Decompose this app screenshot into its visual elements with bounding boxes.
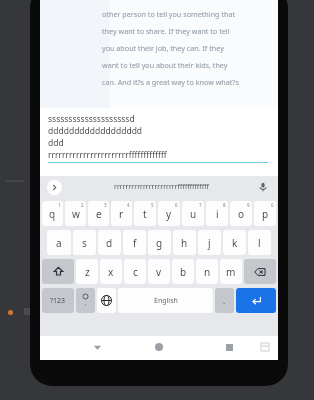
button[interactable]: Switch keyboard xyxy=(258,340,272,354)
staticText: ssssssssssssssssssssd xyxy=(48,113,135,125)
button[interactable]: ?123 xyxy=(42,288,74,313)
button[interactable]: o xyxy=(230,201,252,226)
staticText: you about their job, they can. If they xyxy=(102,43,224,53)
staticText: e xyxy=(96,207,102,221)
staticText: can. And it?s a great way to know what?s xyxy=(102,77,239,87)
button[interactable]: s xyxy=(73,230,96,255)
staticText: p xyxy=(262,207,269,221)
button[interactable]: v xyxy=(148,259,170,284)
staticText: English xyxy=(154,296,178,306)
staticText: k xyxy=(232,236,238,250)
button[interactable]: Emoji xyxy=(76,288,95,313)
staticText: m xyxy=(226,265,236,279)
staticText: . xyxy=(223,295,226,306)
button[interactable]: z xyxy=(76,259,98,284)
staticText: 7 xyxy=(199,202,202,208)
button[interactable]: q xyxy=(42,201,63,226)
staticText: o xyxy=(238,207,245,221)
button[interactable]: Enter xyxy=(236,288,276,313)
button[interactable]: Shift xyxy=(42,259,74,284)
staticText: 5 xyxy=(151,202,154,208)
staticText: r xyxy=(119,207,124,221)
button[interactable]: Home xyxy=(150,338,168,356)
staticText: 8 xyxy=(223,202,226,208)
button[interactable]: x xyxy=(100,259,122,284)
staticText: l xyxy=(258,236,261,250)
staticText: v xyxy=(156,265,162,279)
button[interactable]: l xyxy=(248,230,271,255)
button[interactable]: t xyxy=(134,201,156,226)
staticText: other person to tell you something that xyxy=(102,9,236,19)
button[interactable]: p xyxy=(254,201,276,226)
button[interactable]: e xyxy=(88,201,109,226)
button[interactable]: h xyxy=(173,230,196,255)
button[interactable]: u xyxy=(182,201,204,226)
button[interactable]: k xyxy=(223,230,246,255)
button[interactable]: m xyxy=(220,259,242,284)
button[interactable]: c xyxy=(124,259,146,284)
staticText: j xyxy=(208,236,211,250)
staticText: y xyxy=(166,207,172,221)
staticText: 9 xyxy=(247,202,250,208)
button[interactable]: n xyxy=(196,259,218,284)
button[interactable]: g xyxy=(148,230,171,255)
button[interactable]: . xyxy=(215,288,234,313)
staticText: u xyxy=(190,207,197,221)
button[interactable]: Hide keyboard xyxy=(88,338,106,356)
staticText: dddddddddddddddddd xyxy=(48,125,143,137)
staticText: 3 xyxy=(104,202,107,208)
button[interactable]: d xyxy=(98,230,121,255)
staticText: ?123 xyxy=(50,296,66,306)
staticText: t xyxy=(143,207,147,221)
button[interactable]: a xyxy=(47,230,71,255)
button[interactable]: f xyxy=(123,230,146,255)
button[interactable]: j xyxy=(198,230,221,255)
staticText: g xyxy=(156,236,163,250)
staticText: 1 xyxy=(58,202,61,208)
staticText: w xyxy=(72,207,80,221)
button[interactable]: r xyxy=(111,201,132,226)
staticText: 6 xyxy=(175,202,178,208)
staticText: h xyxy=(181,236,188,250)
button[interactable]: i xyxy=(206,201,228,226)
button[interactable]: b xyxy=(172,259,194,284)
staticText: d xyxy=(106,236,113,250)
staticText: s xyxy=(82,236,87,250)
button[interactable]: ssssssssssssssssssssd xyxy=(48,113,268,163)
staticText: n xyxy=(204,265,211,279)
staticText: , xyxy=(85,299,87,307)
staticText: x xyxy=(108,265,114,279)
staticText: rrrrrrrrrrrrrrrrrrrrrrrfffffffffffff xyxy=(48,149,167,161)
staticText: 4 xyxy=(127,202,130,208)
staticText: f xyxy=(133,236,137,250)
button[interactable]: y xyxy=(158,201,180,226)
staticText: c xyxy=(133,265,138,279)
staticText: i xyxy=(216,207,219,221)
staticText: q xyxy=(49,207,56,221)
button[interactable]: English xyxy=(118,288,213,313)
staticText: b xyxy=(180,265,187,279)
staticText: z xyxy=(85,265,90,279)
staticText: they want to share. If they want to tell xyxy=(102,26,230,36)
staticText: 2 xyxy=(81,202,84,208)
staticText: ddd xyxy=(48,137,64,149)
button[interactable]: Voice input xyxy=(256,180,270,194)
button[interactable]: Change language xyxy=(97,288,116,313)
button[interactable]: Expand toolbar xyxy=(47,180,62,195)
staticText: 0 xyxy=(271,202,274,208)
button[interactable]: Backspace xyxy=(244,259,276,284)
button[interactable]: rrrrrrrrrrrrrrrrrrrrrrfffffffffffff xyxy=(114,182,209,192)
staticText: a xyxy=(56,236,62,250)
staticText: want to tell you about their kids, they xyxy=(102,60,228,70)
button[interactable]: w xyxy=(65,201,86,226)
button[interactable]: Recents xyxy=(220,338,238,356)
